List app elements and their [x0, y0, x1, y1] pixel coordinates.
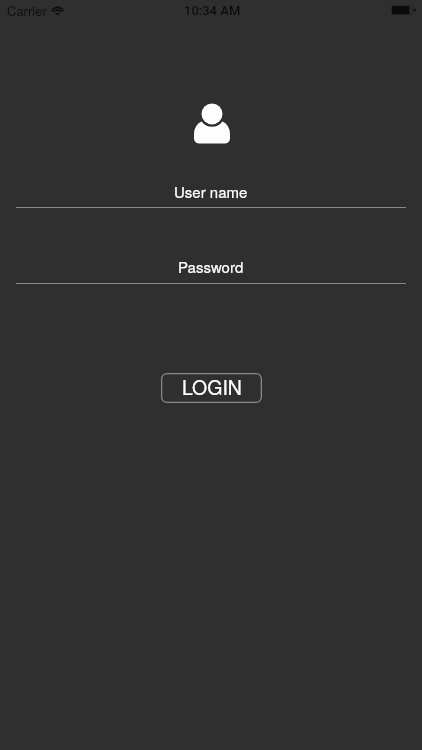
staticText: LOGIN — [182, 373, 242, 401]
staticText: 10:34 AM — [184, 3, 241, 18]
button[interactable]: User name — [16, 173, 406, 209]
button[interactable]: Password — [16, 248, 406, 285]
button[interactable]: LOGIN — [161, 373, 262, 403]
other: Battery — [390, 4, 417, 16]
other: Wi-Fi signal — [50, 5, 65, 16]
staticText: Password — [178, 256, 244, 277]
other: User avatar — [194, 103, 230, 144]
staticText: User name — [174, 181, 248, 202]
staticText: Carrier — [7, 1, 47, 20]
